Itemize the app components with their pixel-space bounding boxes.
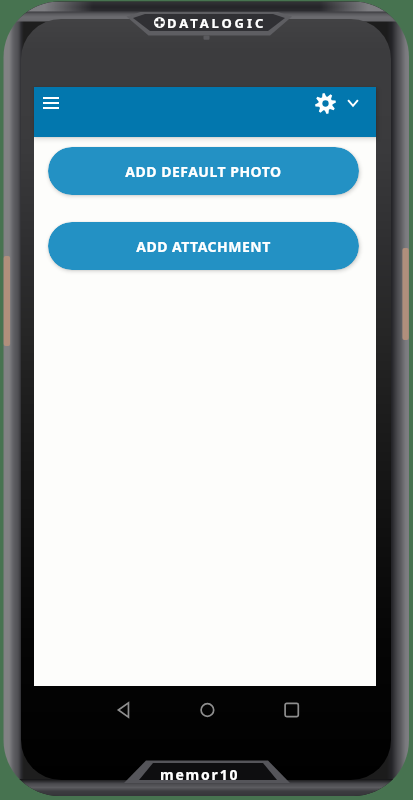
staticText: ADD ATTACHMENT bbox=[136, 237, 271, 256]
button[interactable]: ADD ATTACHMENT bbox=[48, 222, 359, 270]
staticText: ADD DEFAULT PHOTO bbox=[125, 162, 282, 181]
button[interactable]: Settings bbox=[310, 88, 340, 118]
staticText: memor10 bbox=[160, 765, 240, 780]
button[interactable]: Menu bbox=[36, 88, 66, 118]
staticText: DATALOGIC bbox=[167, 14, 267, 31]
button[interactable]: ADD DEFAULT PHOTO bbox=[48, 147, 359, 195]
button[interactable]: More options bbox=[340, 90, 366, 116]
